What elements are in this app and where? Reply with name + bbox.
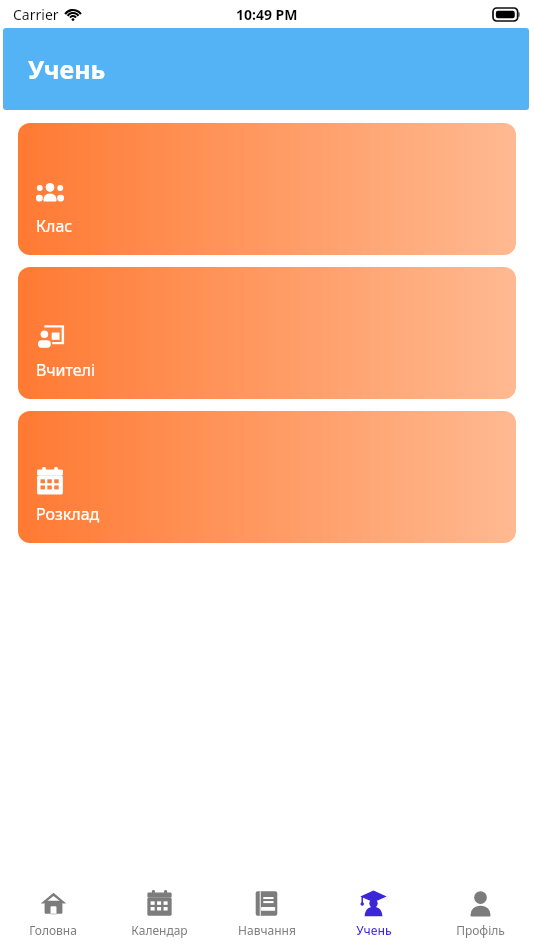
staticText: Carrier	[13, 5, 59, 24]
button[interactable]: Клас	[18, 123, 516, 255]
staticText: Учень	[28, 52, 106, 86]
button[interactable]: Профіль	[427, 872, 534, 950]
button[interactable]: Навчання	[213, 872, 320, 950]
staticText: Головна	[29, 922, 77, 938]
staticText: Календар	[131, 922, 188, 938]
button[interactable]: Вчителі	[18, 267, 516, 399]
staticText: Вчителі	[36, 359, 96, 381]
staticText: Розклад	[36, 503, 100, 525]
button[interactable]: Розклад	[18, 411, 516, 543]
button[interactable]: Головна	[0, 872, 106, 950]
button[interactable]: Календар	[106, 872, 213, 950]
staticText: Навчання	[238, 922, 296, 938]
staticText: Учень	[356, 922, 392, 938]
staticText: Профіль	[456, 922, 505, 938]
staticText: 10:49 PM	[236, 5, 298, 24]
staticText: Клас	[36, 215, 73, 237]
button[interactable]: Учень	[320, 872, 427, 950]
